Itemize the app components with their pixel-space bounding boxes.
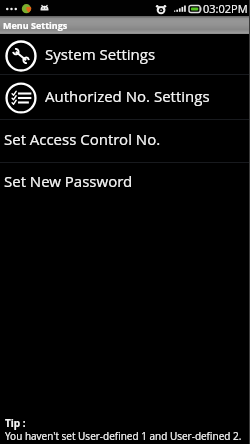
staticText: 03:02PM (203, 1, 248, 16)
staticText: Set New Password (4, 171, 133, 191)
other: System Settings (5, 40, 37, 72)
button[interactable]: System Settings (0, 34, 250, 74)
staticText: Menu Settings (3, 19, 68, 31)
staticText: System Settings (45, 44, 156, 64)
other: Authorized number settings (5, 82, 37, 114)
button[interactable]: Authorized number settings (0, 75, 250, 119)
staticText: Tip : (5, 416, 26, 430)
button[interactable]: Set New Password (0, 163, 250, 205)
staticText: Set Access Control No. (4, 129, 161, 149)
button[interactable]: Set Access Control No. (0, 120, 250, 162)
staticText: You haven't set User-defined 1 and User-… (5, 429, 242, 443)
staticText: Authorized No. Settings (45, 86, 210, 106)
